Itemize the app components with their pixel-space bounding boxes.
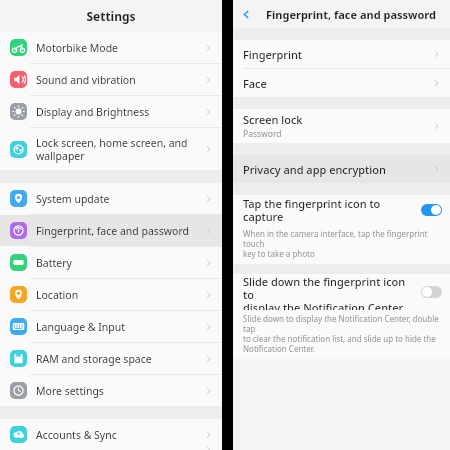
button[interactable]: Accounts & Sync xyxy=(0,419,222,450)
button[interactable]: Slide down the fingerprint icon to displ… xyxy=(233,274,450,310)
button[interactable]: Screen lock xyxy=(233,109,450,143)
button[interactable]: Motorbike Mode xyxy=(0,32,222,63)
staticText: Battery xyxy=(36,256,204,270)
staticText: Privacy and app encryption xyxy=(243,162,386,177)
staticText: Slide down to display the Notification C… xyxy=(243,313,442,354)
button[interactable]: System update xyxy=(0,183,222,214)
button[interactable]: RAM and storage space xyxy=(0,343,222,374)
staticText: Fingerprint, face and password xyxy=(266,7,437,22)
staticText: Lock screen, home screen, and wallpaper xyxy=(36,136,204,163)
staticText: Face xyxy=(243,76,267,91)
button[interactable]: Location xyxy=(0,279,222,310)
button[interactable]: Fingerprint xyxy=(233,40,450,68)
staticText: Fingerprint xyxy=(243,47,303,62)
button[interactable]: Sound and vibration xyxy=(0,64,222,95)
button[interactable]: Lock screen, home screen, and wallpaper xyxy=(0,128,222,170)
staticText: Motorbike Mode xyxy=(36,41,204,55)
button[interactable]: Fingerprint, face and password xyxy=(0,215,222,246)
staticText: Location xyxy=(36,288,204,302)
button[interactable]: More settings xyxy=(0,375,222,406)
staticText: Language & Input xyxy=(36,320,204,334)
staticText: Password xyxy=(243,128,282,140)
staticText: Display and Brightness xyxy=(36,105,204,119)
staticText: More settings xyxy=(36,384,204,398)
button[interactable]: Back xyxy=(233,1,259,27)
staticText: Screen lock xyxy=(243,112,303,127)
staticText: Settings xyxy=(86,8,136,24)
staticText: Tap the fingerprint icon to capture xyxy=(243,196,415,224)
staticText: System update xyxy=(36,192,204,206)
button[interactable]: Privacy and app encryption xyxy=(233,155,450,183)
button[interactable]: Language & Input xyxy=(0,311,222,342)
button[interactable]: Tap the fingerprint icon to capture xyxy=(233,195,450,225)
staticText: Slide down the fingerprint icon to displ… xyxy=(243,274,415,310)
button[interactable]: Face xyxy=(233,69,450,97)
staticText: Sound and vibration xyxy=(36,73,204,87)
staticText: Accounts & Sync xyxy=(36,428,204,442)
staticText: RAM and storage space xyxy=(36,352,204,366)
staticText: Fingerprint, face and password xyxy=(36,224,204,238)
button[interactable]: Battery xyxy=(0,247,222,278)
staticText: When in the camera interface, tap the fi… xyxy=(243,228,442,259)
button[interactable]: Display and Brightness xyxy=(0,96,222,127)
